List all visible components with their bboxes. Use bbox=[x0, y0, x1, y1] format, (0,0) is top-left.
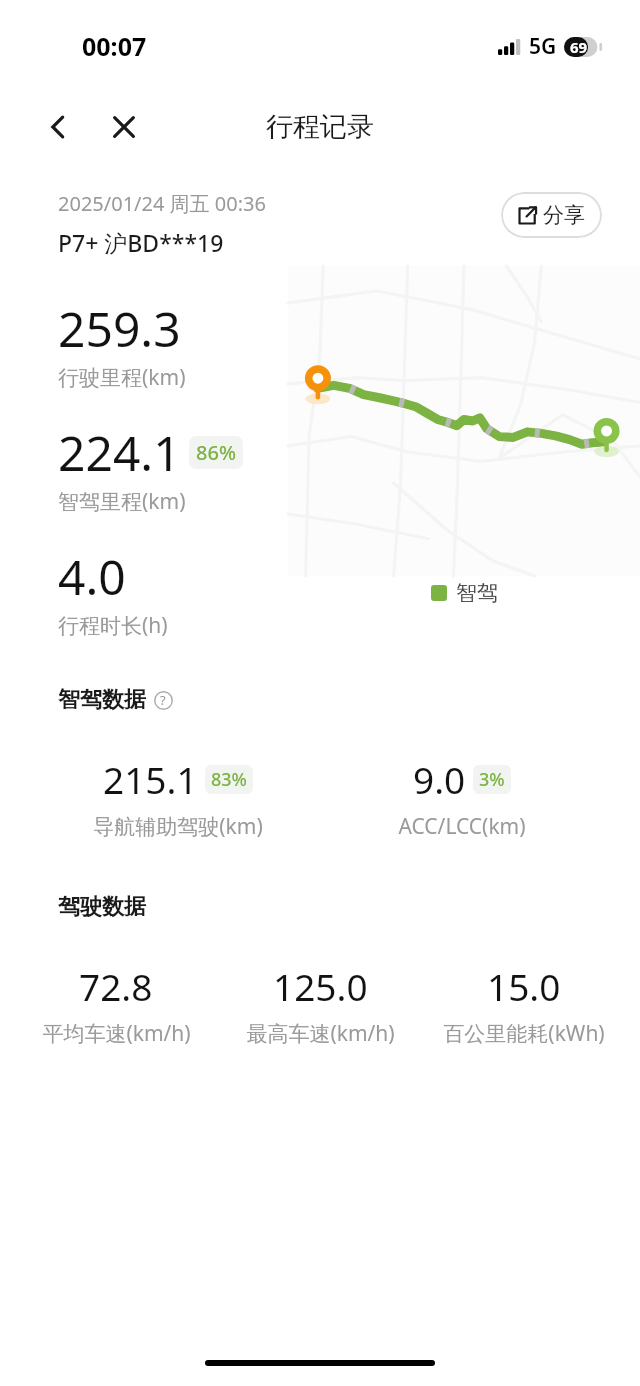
staticText: 驾驶数据 bbox=[58, 893, 146, 921]
staticText: 最高车速(km/h) bbox=[246, 1019, 395, 1048]
staticText: 9.0 bbox=[413, 754, 466, 804]
staticText: P7+ 沪BD***19 bbox=[58, 227, 224, 258]
staticText: 224.1 bbox=[58, 420, 181, 485]
staticText: 分享 bbox=[543, 202, 585, 228]
staticText: 智驾数据 bbox=[58, 686, 146, 714]
staticText: 72.8 bbox=[79, 961, 153, 1011]
staticText: 4.0 bbox=[58, 544, 126, 609]
staticText: ACC/LCC(km) bbox=[398, 812, 526, 841]
staticText: 69 bbox=[570, 37, 588, 57]
staticText: 00:07 bbox=[82, 29, 147, 63]
staticText: 215.1 bbox=[103, 754, 198, 804]
staticText: 5G bbox=[529, 32, 557, 61]
button[interactable]: Close bbox=[100, 103, 148, 151]
staticText: 行程时长(h) bbox=[58, 611, 168, 640]
button[interactable]: Back bbox=[34, 103, 82, 151]
staticText: 2025/01/24 周五 00:36 bbox=[58, 190, 266, 217]
staticText: 259.3 bbox=[58, 296, 181, 361]
staticText: 导航辅助驾驶(km) bbox=[93, 812, 263, 841]
staticText: 125.0 bbox=[273, 961, 368, 1011]
staticText: 83% bbox=[211, 767, 247, 792]
staticText: 15.0 bbox=[487, 961, 561, 1011]
staticText: 3% bbox=[479, 767, 505, 792]
staticText: 86% bbox=[196, 439, 236, 466]
staticText: 行程记录 bbox=[266, 110, 374, 144]
staticText: 平均车速(km/h) bbox=[42, 1019, 191, 1048]
staticText: ? bbox=[160, 691, 166, 709]
staticText: 行驶里程(km) bbox=[58, 363, 186, 392]
staticText: 智驾里程(km) bbox=[58, 487, 186, 516]
button[interactable]: Help bbox=[152, 689, 174, 711]
button[interactable]: 分享 bbox=[501, 192, 602, 238]
staticText: 智驾 bbox=[456, 580, 498, 606]
staticText: 百公里能耗(kWh) bbox=[443, 1019, 605, 1048]
